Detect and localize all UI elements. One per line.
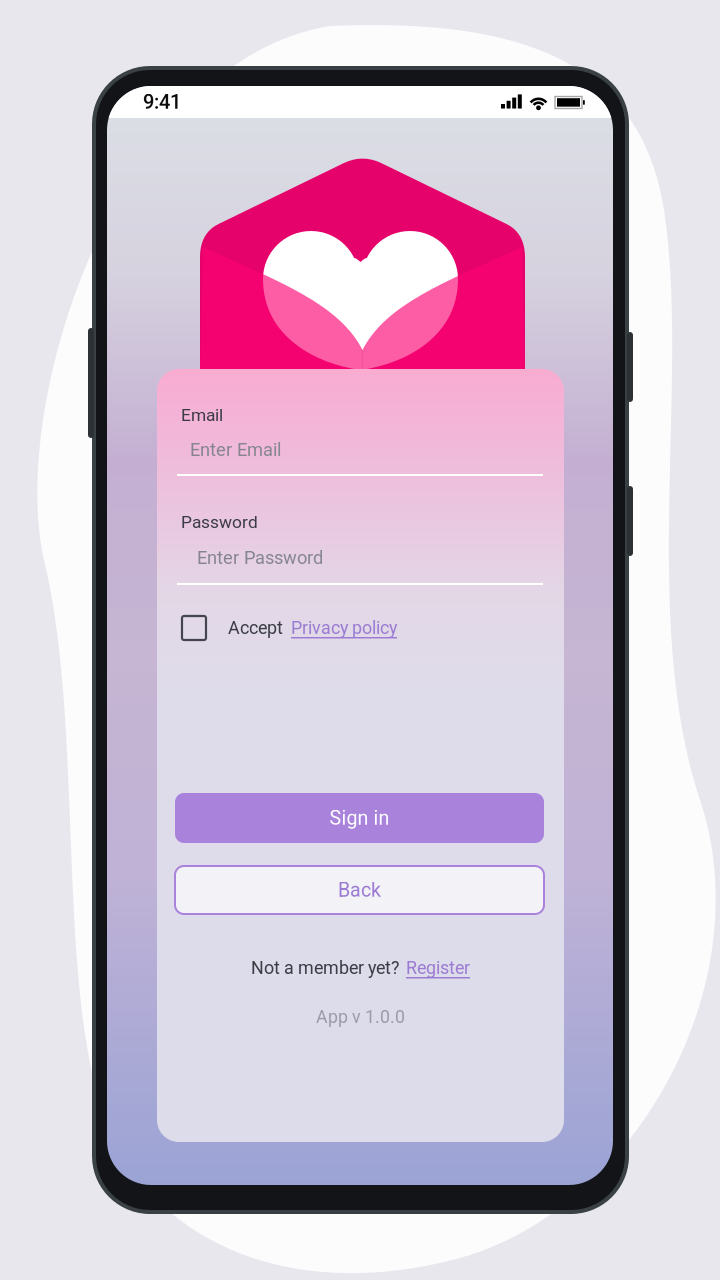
staticText: Password [181,512,258,532]
staticText: 9:41 [143,90,181,114]
staticText: Sign in [329,806,389,829]
staticText: Privacy policy [291,617,397,638]
staticText: Enter Password [197,547,323,568]
button[interactable]: Accept [157,610,564,646]
staticText: Enter Email [190,439,281,460]
staticText: Back [338,878,381,901]
button[interactable]: Register [406,957,470,978]
button[interactable]: Back [175,866,544,914]
staticText: Not a member yet? [251,957,399,978]
staticText: Register [406,957,470,978]
staticText: Email [181,405,223,425]
staticText: App v 1.0.0 [316,1007,405,1027]
staticText: Accept [228,617,283,638]
button[interactable]: Sign in [175,793,544,843]
